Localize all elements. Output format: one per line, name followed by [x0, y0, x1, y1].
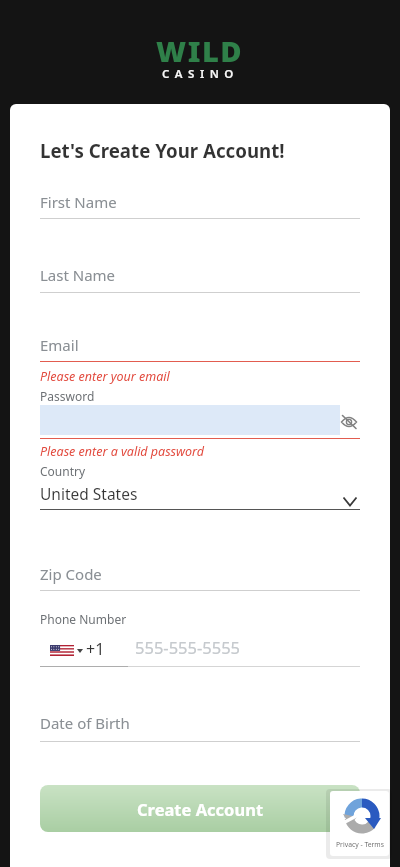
- button[interactable]: [40, 190, 360, 214]
- staticText: Create Account: [137, 798, 264, 820]
- button[interactable]: [341, 415, 357, 429]
- staticText: Email: [40, 335, 79, 355]
- staticText: Zip Code: [40, 564, 102, 584]
- staticText: United States: [40, 483, 138, 504]
- button[interactable]: [40, 333, 360, 357]
- staticText: Phone Number: [40, 611, 127, 627]
- staticText: Privacy - Terms: [336, 840, 384, 849]
- button[interactable]: Create Account: [40, 785, 360, 832]
- staticText: Please enter a valid password: [40, 443, 205, 460]
- button[interactable]: [40, 263, 360, 287]
- staticText: Last Name: [40, 265, 116, 285]
- button[interactable]: [40, 562, 360, 586]
- button[interactable]: Privacy - Terms: [330, 791, 389, 856]
- staticText: First Name: [40, 192, 117, 212]
- staticText: Date of Birth: [40, 713, 130, 733]
- staticText: Country: [40, 463, 86, 479]
- button[interactable]: [40, 711, 360, 735]
- button[interactable]: [40, 481, 360, 507]
- button[interactable]: [50, 645, 74, 656]
- staticText: Password: [40, 388, 95, 404]
- staticText: 555-555-5555: [135, 636, 241, 658]
- staticText: CASINO: [162, 66, 239, 82]
- staticText: Please enter your email: [40, 368, 170, 385]
- staticText: Let's Create Your Account!: [40, 138, 285, 163]
- staticText: WILD: [156, 31, 244, 70]
- staticText: +1: [86, 638, 105, 660]
